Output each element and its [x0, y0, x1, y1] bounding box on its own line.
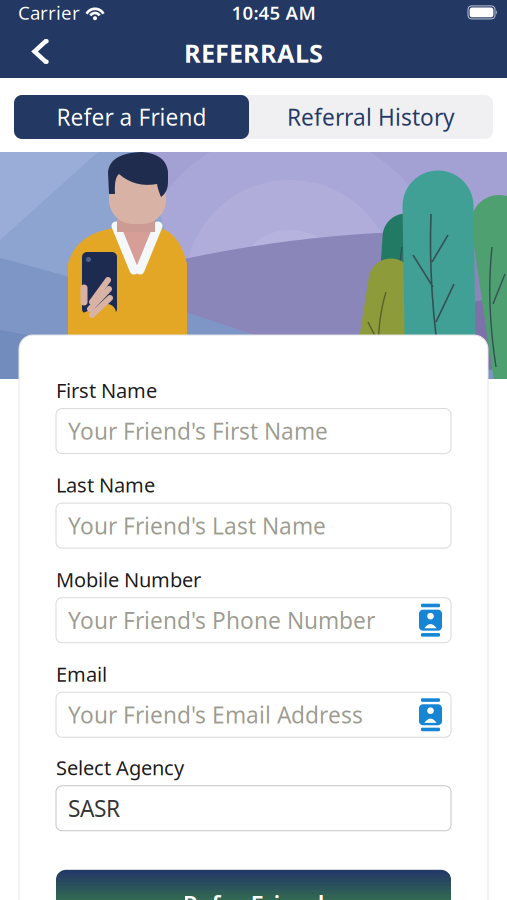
button[interactable]: Choose from Contacts — [419, 604, 442, 637]
staticText: Carrier — [18, 0, 80, 25]
button[interactable]: SASR — [56, 786, 451, 831]
staticText: Referral History — [287, 102, 455, 132]
textField[interactable]: Your Friend's First Name — [68, 416, 451, 446]
staticText: SASR — [68, 793, 120, 823]
button[interactable]: Referral History — [249, 95, 493, 139]
textField[interactable]: Your Friend's Email Address — [68, 700, 419, 730]
staticText: Your Friend's First Name — [68, 416, 328, 446]
button[interactable]: Back — [0, 31, 68, 72]
staticText: Mobile Number — [56, 566, 201, 593]
staticText: Your Friend's Last Name — [68, 511, 326, 541]
button[interactable]: Refer a Friend — [14, 95, 249, 139]
button[interactable]: Choose from Contacts — [419, 698, 442, 731]
staticText: Your Friend's Phone Number — [68, 605, 375, 635]
textField[interactable]: Your Friend's Last Name — [68, 511, 451, 541]
staticText: Select Agency — [56, 754, 184, 781]
staticText: Email — [56, 661, 107, 687]
button[interactable]: Refer Friend — [56, 870, 451, 900]
textField[interactable]: Your Friend's Phone Number — [68, 605, 419, 635]
staticText: Last Name — [56, 472, 155, 498]
staticText: Your Friend's Email Address — [68, 700, 363, 730]
staticText: REFERRALS — [184, 36, 323, 70]
staticText: Refer a Friend — [56, 102, 206, 132]
staticText: First Name — [56, 377, 157, 404]
staticText: Refer Friend — [182, 888, 324, 900]
staticText: 10:45 AM — [231, 0, 315, 25]
